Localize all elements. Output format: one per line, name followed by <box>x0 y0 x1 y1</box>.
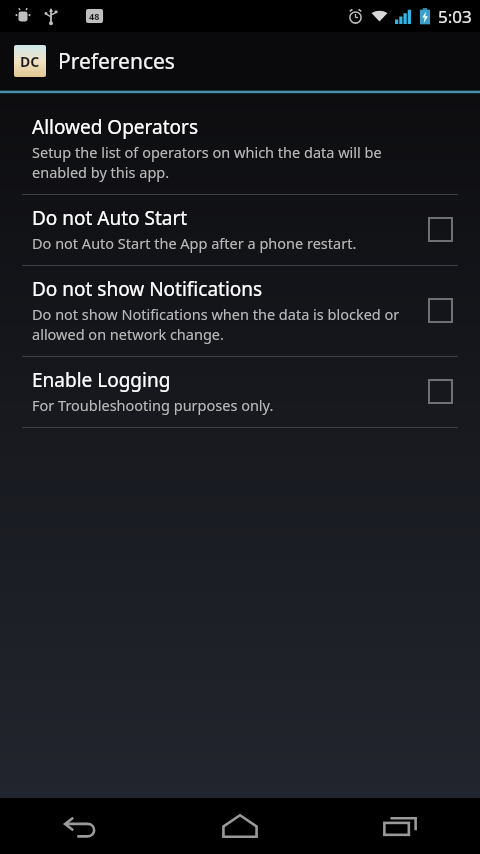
staticText: Do not Auto Start the App after a phone … <box>32 233 357 253</box>
staticText: Do not show Notifications when the data … <box>32 304 406 344</box>
button[interactable]: Toggle Enable Logging <box>420 371 460 411</box>
button[interactable]: Home <box>160 798 320 854</box>
staticText: Setup the list of operators on which the… <box>32 142 420 182</box>
staticText: Do not Auto Start <box>32 205 188 231</box>
button[interactable]: Toggle Do not show Notifications <box>420 290 460 330</box>
staticText: DC <box>20 52 40 71</box>
button[interactable]: Back <box>0 798 160 854</box>
button[interactable]: Allowed Operators <box>0 104 480 194</box>
staticText: For Troubleshooting purposes only. <box>32 395 274 415</box>
button[interactable]: Enable Logging <box>0 357 480 427</box>
button[interactable]: Recent apps <box>320 798 480 854</box>
button[interactable]: Toggle Do not Auto Start <box>420 209 460 249</box>
staticText: 48 <box>89 10 100 22</box>
button[interactable]: Do not Auto Start <box>0 195 480 265</box>
staticText: Preferences <box>58 47 175 76</box>
staticText: Allowed Operators <box>32 114 199 140</box>
staticText: Do not show Notifications <box>32 276 263 302</box>
staticText: 5:03 <box>438 5 472 28</box>
staticText: Enable Logging <box>32 367 171 393</box>
button[interactable]: Do not show Notifications <box>0 266 480 356</box>
